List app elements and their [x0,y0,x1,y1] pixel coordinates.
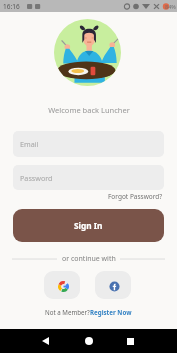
staticText: 84% [165,3,176,10]
staticText: 16:16 [3,2,20,11]
button[interactable]: Sign in with Google [44,271,80,299]
staticText: Not a Member? [45,308,90,316]
button[interactable]: Recents [118,329,142,353]
button[interactable]: Forgot Password? [106,190,165,203]
button[interactable]: Password [13,165,164,190]
button[interactable]: Sign in with Facebook [95,271,131,299]
button[interactable]: Home [77,329,101,353]
staticText: Password [20,173,53,183]
button[interactable]: Register Now [90,308,132,316]
button[interactable]: Sign In [13,209,164,242]
staticText: Email [20,139,39,149]
staticText: Welcome back Luncher [48,105,130,115]
button[interactable]: Email [13,131,164,157]
staticText: Sign In [74,220,103,231]
staticText: or continue with [62,254,116,264]
button[interactable]: Back [33,329,57,353]
